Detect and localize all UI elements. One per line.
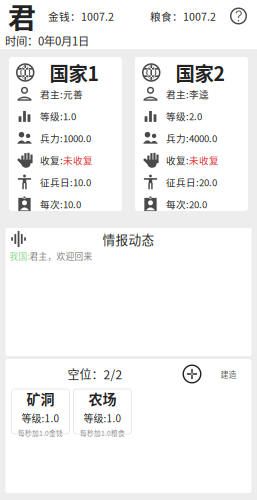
staticText: ? xyxy=(235,7,242,25)
staticText: 国家1 xyxy=(49,58,98,86)
staticText: 4000.0 xyxy=(189,131,217,145)
staticText: 农场 xyxy=(88,388,116,409)
staticText: 每次: xyxy=(166,197,189,211)
staticText: 10.0 xyxy=(73,175,91,189)
staticText: 每秒加1.0金钱 xyxy=(18,428,63,438)
staticText: 收复: xyxy=(40,153,63,167)
staticText: 兵力: xyxy=(166,131,189,145)
staticText: 收复: xyxy=(166,153,189,167)
staticText: 每次: xyxy=(40,197,63,211)
button[interactable]: 新建建筑 xyxy=(180,362,203,385)
staticText: 征兵日: xyxy=(40,175,73,189)
staticText: 等级:1.0 xyxy=(83,411,121,425)
staticText: 等级: xyxy=(166,109,189,123)
staticText: 未收复 xyxy=(63,153,93,167)
staticText: 君 xyxy=(8,0,36,36)
staticText: 君主: xyxy=(40,87,63,101)
button[interactable]: 建造 xyxy=(209,363,247,384)
staticText: 1000.0 xyxy=(63,131,91,145)
staticText: 元善 xyxy=(63,87,83,101)
staticText: 未收复 xyxy=(189,153,219,167)
staticText: 建造 xyxy=(220,368,236,380)
staticText: 情报动态 xyxy=(102,230,154,248)
button[interactable]: 帮助 xyxy=(227,4,250,27)
staticText: 10.0 xyxy=(63,197,81,211)
staticText: 20.0 xyxy=(189,197,207,211)
staticText: 1.0 xyxy=(63,109,76,123)
button[interactable]: 农场 xyxy=(73,389,131,434)
staticText: 我国: xyxy=(9,250,29,262)
staticText: 征兵日: xyxy=(166,175,199,189)
staticText: 等级:1.0 xyxy=(21,411,59,425)
staticText: 兵力: xyxy=(40,131,63,145)
staticText: 君主: xyxy=(166,87,189,101)
button[interactable]: 矿洞 xyxy=(11,389,69,434)
staticText: 矿洞 xyxy=(26,388,54,409)
staticText: 20.0 xyxy=(199,175,217,189)
staticText: 李逵 xyxy=(189,87,209,101)
staticText: 粮食：1007.2 xyxy=(150,8,216,24)
staticText: 时间：0年0月1日 xyxy=(5,32,89,49)
staticText: 君主，欢迎回来 xyxy=(29,250,92,262)
staticText: 等级: xyxy=(40,109,63,123)
staticText: 金钱：1007.2 xyxy=(48,8,114,24)
staticText: 每秒加1.0粮食 xyxy=(80,428,125,438)
staticText: 国家2 xyxy=(175,58,224,86)
staticText: 2.0 xyxy=(189,109,202,123)
staticText: 空位：2/2 xyxy=(67,365,122,383)
